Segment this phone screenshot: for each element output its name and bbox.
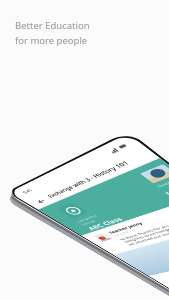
button[interactable]: Back <box>32 196 50 206</box>
staticText: Teacher Jenny <box>107 221 144 235</box>
staticText: 9:41 <box>21 188 35 195</box>
staticText: Sent to <box>80 219 97 226</box>
staticText: Exchange with 3 - History 101 <box>46 159 132 199</box>
staticText: Hi there! Thanks for accepting our desig… <box>118 216 169 246</box>
staticText: Question 1 <box>155 176 169 188</box>
staticText: Better Education <box>15 19 90 32</box>
staticText: Student <box>163 182 169 196</box>
staticText: for more people <box>15 34 88 47</box>
button[interactable]: Teacher Jenny <box>81 194 169 255</box>
staticText: ABC Class <box>85 215 125 231</box>
staticText: Completed <box>75 214 98 223</box>
staticText: Total <box>166 182 169 189</box>
staticText: Jun 2 PM <box>112 230 130 237</box>
